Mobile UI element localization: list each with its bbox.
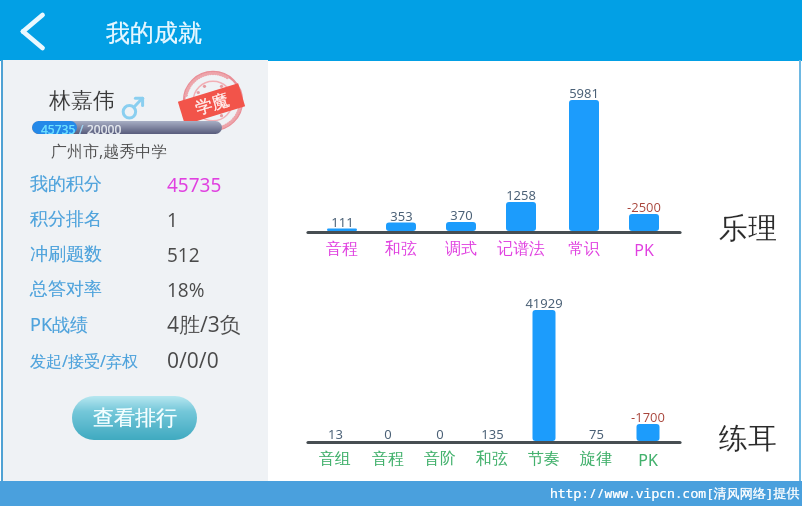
button[interactable]: 查看排行 — [72, 396, 197, 440]
staticText: -2500 — [627, 198, 661, 216]
button[interactable]: 我的积分 — [2, 168, 268, 201]
staticText: 370 — [450, 206, 473, 224]
staticText: 20000 — [87, 121, 122, 134]
button[interactable]: 冲刷题数 — [2, 238, 268, 271]
staticText: 1258 — [506, 186, 536, 204]
staticText: http://www.vipcn.com[清风网络]提供 — [550, 484, 800, 502]
staticText: 积分排名 — [30, 208, 102, 231]
button[interactable]: 旋律 — [556, 449, 636, 469]
button[interactable]: PK — [604, 239, 684, 261]
staticText: 45735 — [167, 172, 222, 198]
staticText: 音组 — [319, 449, 351, 469]
button[interactable]: Back — [10, 7, 58, 55]
staticText: 4胜/3负 — [167, 310, 241, 339]
staticText: PK — [634, 239, 654, 261]
staticText: 135 — [481, 425, 504, 443]
staticText: 0 — [384, 425, 392, 443]
staticText: 512 — [167, 242, 200, 268]
button[interactable]: 节奏 — [504, 449, 584, 469]
button[interactable]: 和弦 — [361, 239, 441, 259]
button[interactable]: 常识 — [544, 239, 624, 259]
button[interactable]: 调式 — [421, 239, 501, 259]
staticText: 13 — [328, 425, 343, 443]
staticText: 音程 — [326, 239, 358, 259]
button[interactable]: 发起/接受/弃权 — [2, 344, 268, 377]
staticText: 冲刷题数 — [30, 243, 102, 266]
staticText: 和弦 — [385, 239, 417, 259]
button[interactable]: 音阶 — [400, 449, 480, 469]
staticText: 和弦 — [476, 449, 508, 469]
staticText: PK — [638, 449, 658, 471]
staticText: 41929 — [525, 294, 563, 312]
staticText: 旋律 — [580, 449, 612, 469]
button[interactable]: 音程 — [348, 449, 428, 469]
staticText: 353 — [390, 207, 413, 225]
staticText: 林嘉伟 — [49, 87, 115, 115]
button[interactable]: PK — [608, 449, 688, 471]
staticText: 发起/接受/弃权 — [30, 350, 138, 372]
staticText: 45735 — [41, 121, 76, 134]
staticText: 节奏 — [528, 449, 560, 469]
staticText: 5981 — [569, 84, 599, 102]
staticText: 18% — [167, 277, 205, 303]
staticText: 广州市,越秀中学 — [51, 140, 168, 162]
staticText: 调式 — [445, 239, 477, 259]
staticText: 查看排行 — [93, 405, 177, 431]
button[interactable]: PK战绩 — [2, 308, 268, 341]
staticText: 音程 — [372, 449, 404, 469]
button[interactable]: 积分排名 — [2, 203, 268, 236]
staticText: 记谱法 — [497, 239, 545, 259]
staticText: PK战绩 — [30, 312, 89, 337]
staticText: 75 — [589, 425, 604, 443]
staticText: 常识 — [568, 239, 600, 259]
staticText: 练耳 — [719, 420, 777, 457]
button[interactable]: 音组 — [295, 449, 375, 469]
staticText: 我的成就 — [106, 18, 202, 48]
button[interactable]: 音程 — [302, 239, 382, 259]
staticText: / — [76, 121, 87, 134]
staticText: 1 — [167, 207, 178, 233]
staticText: 音阶 — [424, 449, 456, 469]
staticText: 总答对率 — [30, 278, 102, 301]
staticText: -1700 — [631, 408, 665, 426]
staticText: 0 — [436, 425, 444, 443]
staticText: 111 — [331, 213, 354, 231]
staticText: 乐理 — [719, 210, 777, 247]
staticText: 我的积分 — [30, 173, 102, 196]
button[interactable]: 总答对率 — [2, 273, 268, 306]
button[interactable]: 和弦 — [452, 449, 532, 469]
staticText: 0/0/0 — [167, 346, 219, 375]
button[interactable]: 记谱法 — [481, 239, 561, 259]
staticText: 学魔 — [193, 89, 231, 119]
